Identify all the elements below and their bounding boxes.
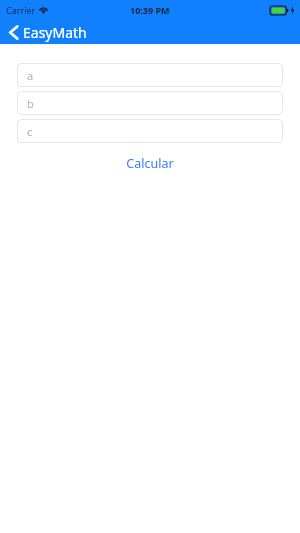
button[interactable]: b — [17, 91, 283, 115]
button[interactable]: Back — [8, 23, 87, 42]
staticText: 10:39 PM — [130, 4, 170, 16]
staticText: c — [27, 124, 33, 139]
staticText: b — [27, 96, 34, 111]
staticText: Carrier — [6, 4, 36, 16]
staticText: a — [27, 68, 34, 83]
button[interactable]: c — [17, 119, 283, 143]
staticText: Calcular — [126, 155, 174, 172]
button[interactable]: Calcular — [0, 152, 300, 174]
button[interactable]: a — [17, 63, 283, 87]
staticText: EasyMath — [23, 23, 87, 42]
